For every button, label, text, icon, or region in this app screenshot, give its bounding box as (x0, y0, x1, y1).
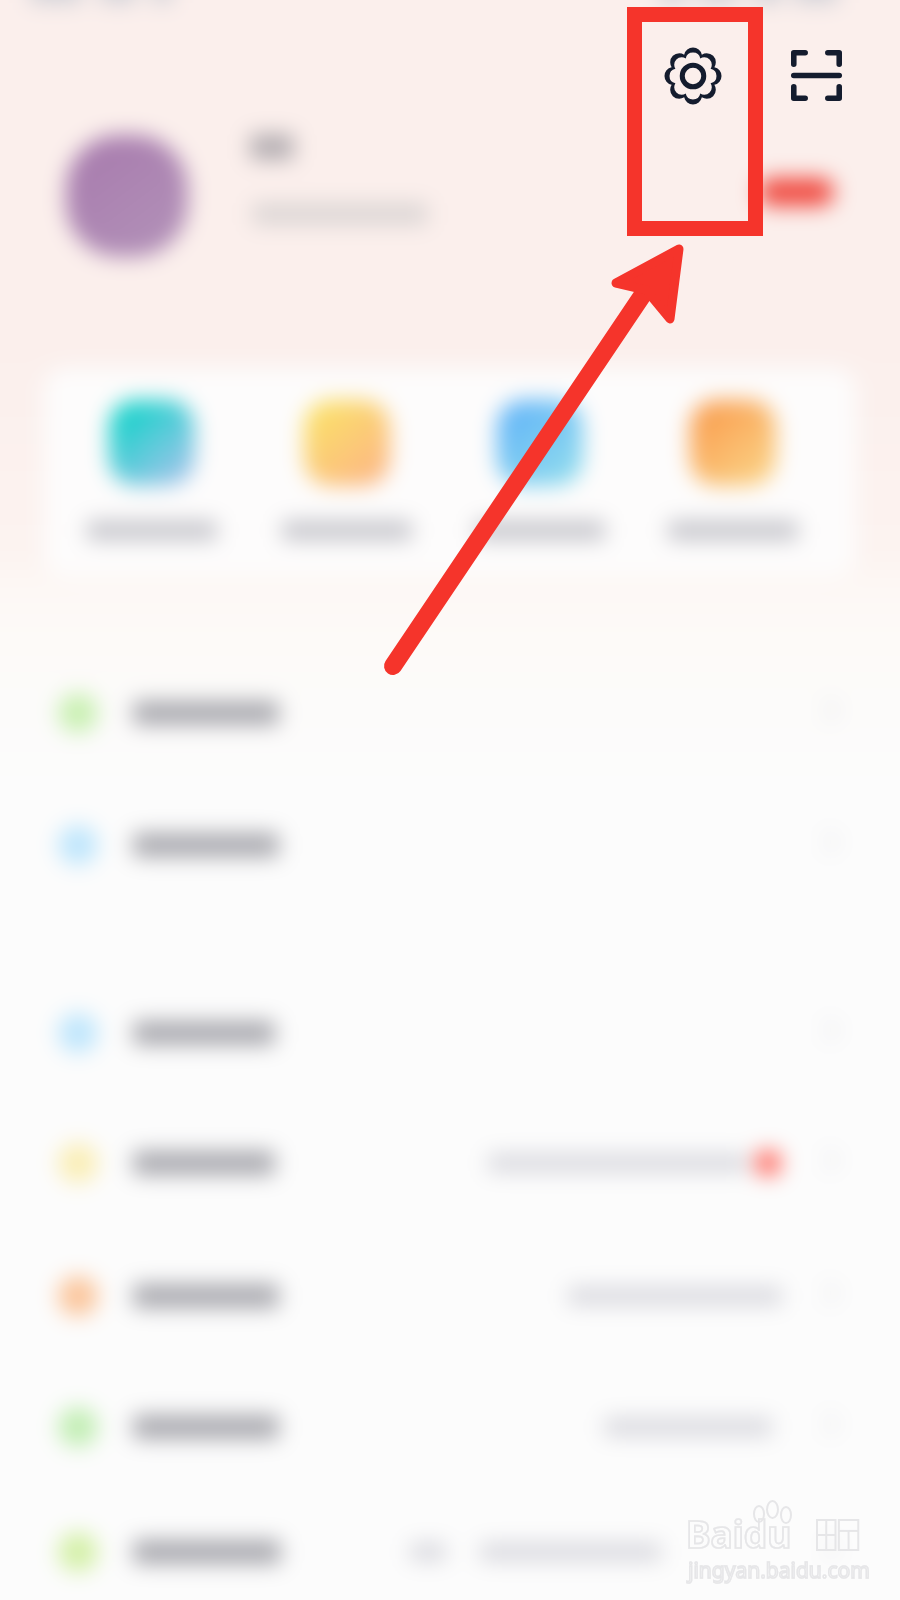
button[interactable] (497, 400, 583, 486)
button[interactable] (0, 653, 900, 773)
button[interactable] (109, 400, 195, 486)
button[interactable] (0, 1103, 900, 1223)
button[interactable] (0, 785, 900, 905)
button[interactable] (304, 400, 390, 486)
button[interactable]: Scan (790, 49, 843, 102)
button[interactable] (0, 973, 900, 1093)
button[interactable]: Profile (40, 120, 600, 280)
staticText: Baidu (686, 1508, 792, 1558)
button[interactable] (0, 1367, 900, 1487)
button[interactable] (690, 400, 776, 486)
button[interactable]: Settings (660, 43, 726, 109)
button[interactable] (0, 1236, 900, 1356)
button[interactable] (0, 1492, 900, 1600)
staticText: jingyan.baidu.com (688, 1556, 870, 1585)
